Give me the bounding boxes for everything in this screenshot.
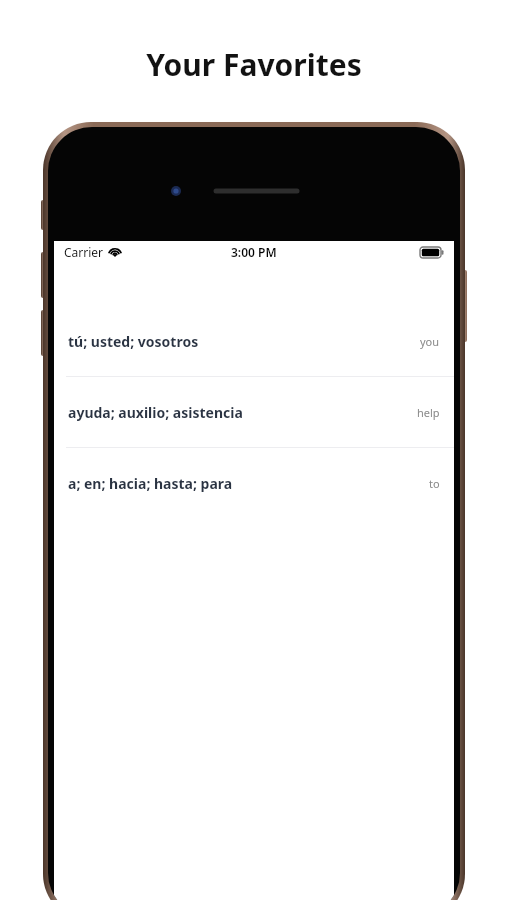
staticText: 3:00 PM <box>231 244 277 260</box>
staticText: tú; usted; vosotros <box>68 332 420 351</box>
staticText: ayuda; auxilio; asistencia <box>68 403 417 422</box>
staticText: Carrier <box>64 244 104 260</box>
staticText: you <box>420 334 440 349</box>
button[interactable]: ayuda; auxilio; asistencia <box>54 377 454 447</box>
staticText: help <box>417 405 440 420</box>
staticText: Your Favorites <box>146 44 362 85</box>
staticText: to <box>429 476 440 491</box>
button[interactable]: tú; usted; vosotros <box>54 306 454 376</box>
staticText: a; en; hacia; hasta; para <box>68 474 429 493</box>
button[interactable]: a; en; hacia; hasta; para <box>54 448 454 518</box>
